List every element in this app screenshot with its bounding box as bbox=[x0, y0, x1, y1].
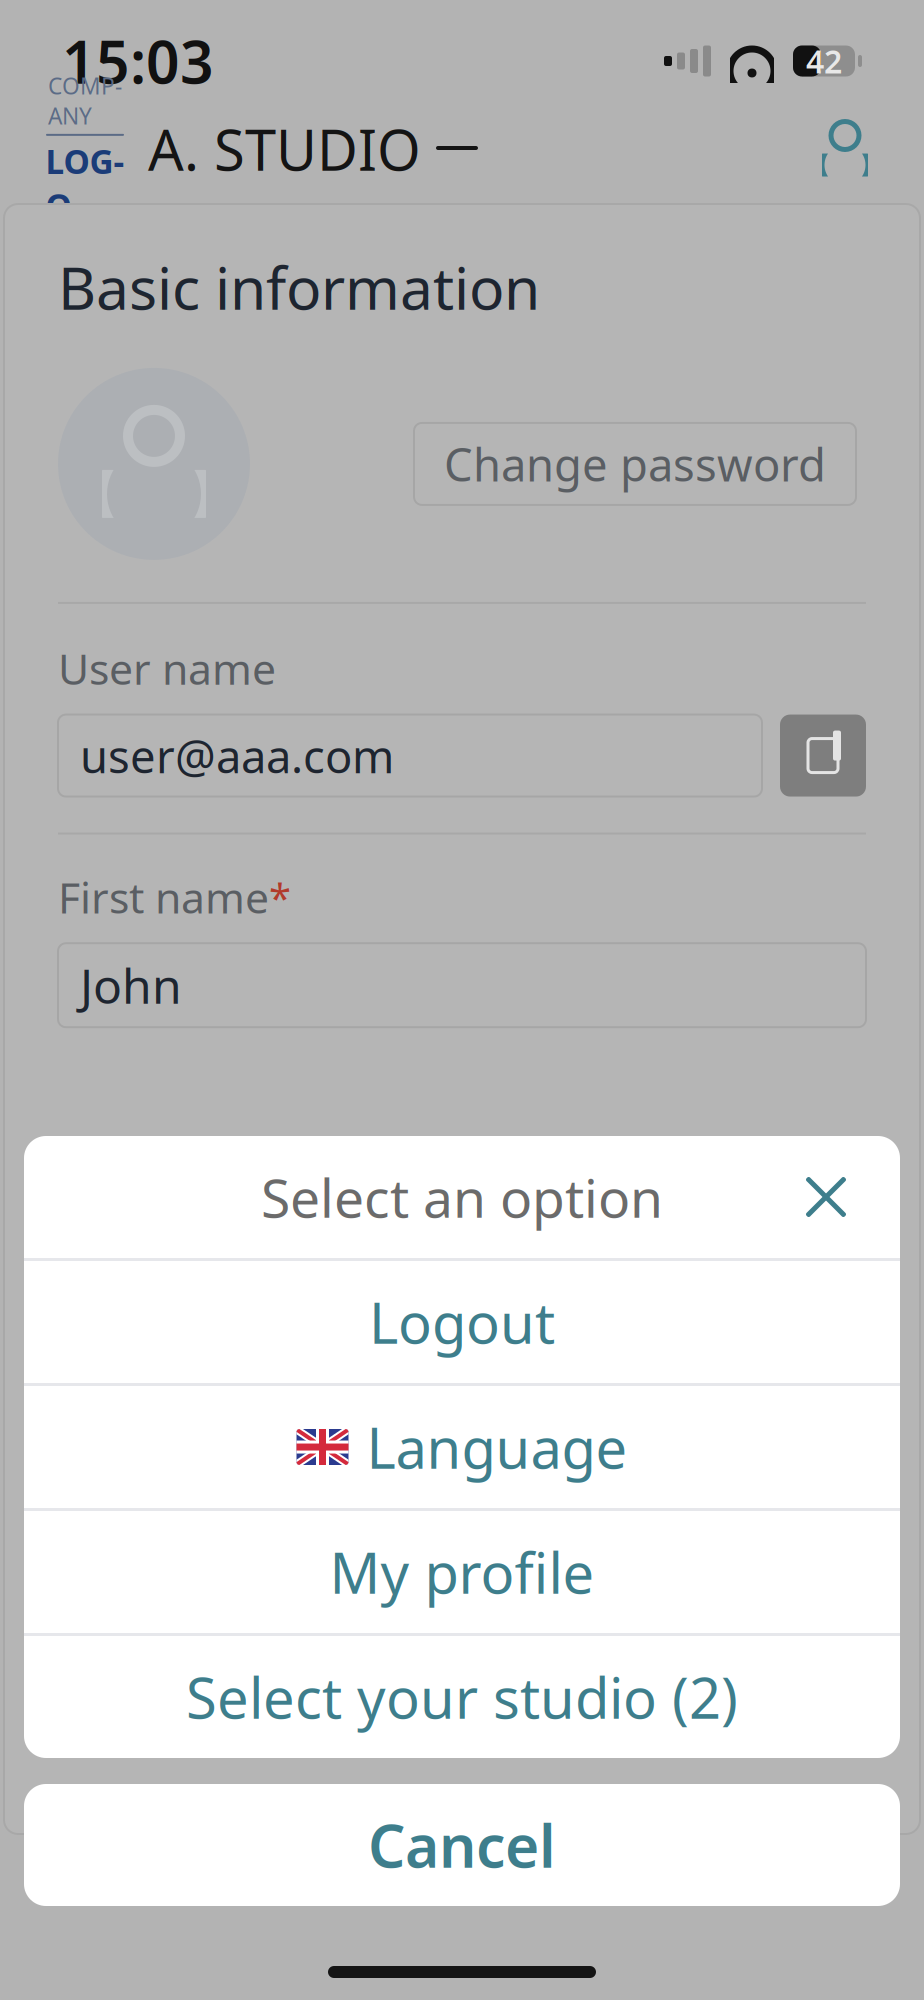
staticText: First name bbox=[58, 869, 269, 925]
staticText: Select an option bbox=[261, 1162, 663, 1232]
staticText: LOGO bbox=[45, 139, 124, 227]
button[interactable]: My profile bbox=[24, 1511, 900, 1633]
staticText: Language bbox=[366, 1410, 627, 1484]
button[interactable]: Change password bbox=[414, 423, 856, 505]
button[interactable]: Logout bbox=[24, 1261, 900, 1383]
button[interactable]: Language bbox=[24, 1386, 900, 1508]
staticText: user@aaa.com bbox=[80, 725, 394, 786]
staticText: Select your studio (2) bbox=[186, 1660, 738, 1734]
staticText: A. STUDIO bbox=[148, 112, 421, 186]
staticText: Cancel bbox=[368, 1806, 556, 1884]
staticText: 15:03 bbox=[62, 22, 214, 100]
staticText: Change password bbox=[444, 434, 826, 494]
staticText: John bbox=[80, 953, 182, 1017]
button[interactable]: Edit user name bbox=[780, 715, 866, 797]
button[interactable]: A. STUDIO bbox=[148, 112, 477, 186]
staticText: 42 bbox=[806, 40, 842, 82]
staticText: Logout bbox=[369, 1285, 555, 1359]
staticText: My profile bbox=[329, 1535, 594, 1609]
button[interactable]: Account bbox=[810, 114, 880, 184]
staticText: COMPANY bbox=[48, 71, 122, 131]
staticText: Basic information bbox=[58, 248, 540, 326]
button[interactable]: Select your studio (2) bbox=[24, 1636, 900, 1758]
button[interactable]: Close bbox=[788, 1159, 864, 1235]
button[interactable]: Cancel bbox=[24, 1784, 900, 1906]
staticText: User name bbox=[58, 640, 276, 697]
staticText: * bbox=[269, 870, 291, 923]
